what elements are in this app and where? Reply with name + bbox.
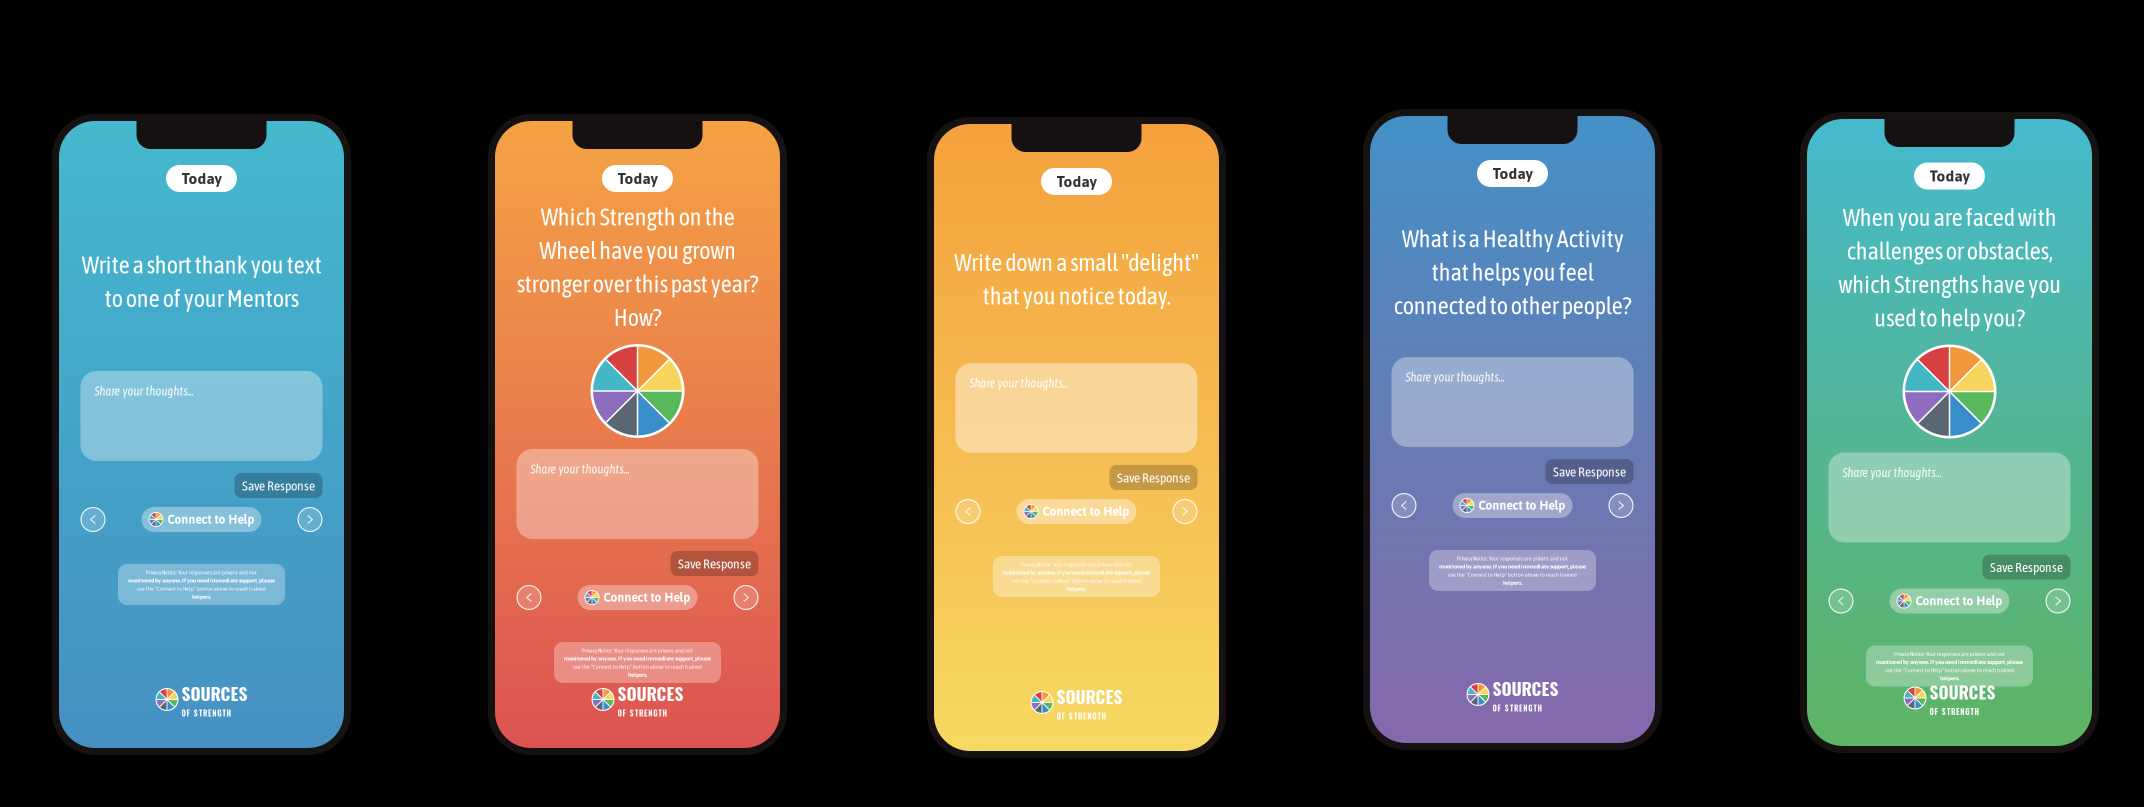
staticText: Connect to Help: [1042, 505, 1129, 518]
button[interactable]: Previous prompt: [80, 507, 105, 532]
staticText: OF STRENGTH: [1492, 703, 1542, 714]
staticText: OF STRENGTH: [181, 708, 231, 719]
staticText: OF STRENGTH: [617, 708, 667, 719]
button[interactable]: Previous prompt: [516, 585, 541, 610]
staticText: Save Response: [1117, 470, 1190, 485]
staticText: When you are faced with challenges or ob…: [1838, 203, 2061, 331]
staticText: What is a Healthy Activity that helps yo…: [1393, 225, 1631, 319]
staticText: SOURCES: [1929, 679, 1995, 705]
staticText: Privacy Notice: Your responses are priva…: [146, 569, 257, 576]
staticText: Connect to Help: [1478, 499, 1565, 512]
staticText: monitored by anyone. If you need immedia…: [1876, 659, 2023, 665]
staticText: Write down a small "delight" that you no…: [954, 248, 1199, 309]
button[interactable]: Next prompt: [2045, 588, 2070, 613]
button[interactable]: Save Response: [234, 473, 322, 498]
staticText: SOURCES: [617, 680, 683, 706]
staticText: Save Response: [678, 556, 751, 571]
staticText: helpers.: [1940, 675, 1959, 681]
staticText: Privacy Notice: Your responses are priva…: [1457, 555, 1568, 562]
button[interactable]: Save Response: [1545, 459, 1633, 484]
staticText: Share your thoughts...: [969, 376, 1068, 390]
button[interactable]: Connect to Help: [141, 507, 261, 532]
staticText: Share your thoughts...: [1842, 465, 1941, 480]
staticText: SOURCES: [1492, 675, 1558, 701]
staticText: Connect to Help: [603, 591, 690, 604]
button[interactable]: Connect to Help: [1016, 499, 1136, 524]
button[interactable]: Today: [1914, 162, 1985, 189]
staticText: monitored by anyone. If you need immedia…: [128, 577, 275, 584]
button[interactable]: Next prompt: [297, 507, 322, 532]
staticText: OF STRENGTH: [1056, 711, 1106, 722]
staticText: SOURCES: [181, 680, 247, 706]
button[interactable]: Previous prompt: [955, 499, 980, 524]
staticText: Share your thoughts...: [94, 384, 193, 398]
staticText: Today: [1929, 167, 1969, 185]
button[interactable]: Save Response: [670, 551, 758, 576]
staticText: monitored by anyone. If you need immedia…: [564, 655, 711, 662]
staticText: Save Response: [242, 478, 315, 493]
staticText: Write a short thank you text to one of y…: [81, 251, 321, 312]
button[interactable]: Next prompt: [1608, 493, 1633, 518]
button[interactable]: Next prompt: [733, 585, 758, 610]
button[interactable]: Connect to Help: [1452, 493, 1572, 518]
staticText: Today: [1492, 165, 1532, 182]
staticText: use the "Connect to Help" button above t…: [1448, 571, 1577, 578]
button[interactable]: Save Response: [1982, 554, 2070, 579]
staticText: helpers.: [628, 671, 647, 678]
staticText: Save Response: [1990, 559, 2063, 575]
staticText: Today: [1056, 173, 1096, 190]
staticText: use the "Connect to Help" button above t…: [1885, 667, 2014, 673]
button[interactable]: Save Response: [1109, 465, 1197, 490]
staticText: Today: [181, 170, 221, 187]
staticText: helpers.: [1503, 579, 1522, 586]
staticText: Share your thoughts...: [1405, 370, 1504, 384]
staticText: Which Strength on the Wheel have you gro…: [516, 203, 758, 331]
staticText: use the "Connect to Help" button above t…: [137, 585, 266, 592]
staticText: Connect to Help: [167, 513, 254, 526]
staticText: SOURCES: [1056, 683, 1122, 709]
staticText: use the "Connect to Help" button above t…: [1012, 577, 1141, 584]
staticText: Connect to Help: [1915, 594, 2002, 608]
staticText: helpers.: [192, 593, 211, 600]
button[interactable]: Previous prompt: [1391, 493, 1416, 518]
staticText: OF STRENGTH: [1929, 706, 1979, 717]
staticText: Save Response: [1553, 464, 1626, 479]
button[interactable]: Today: [1477, 160, 1548, 187]
button[interactable]: Next prompt: [1172, 499, 1197, 524]
staticText: use the "Connect to Help" button above t…: [573, 663, 702, 670]
button[interactable]: Today: [166, 165, 237, 192]
button[interactable]: Connect to Help: [1889, 588, 2009, 613]
staticText: Privacy Notice: Your responses are priva…: [1894, 650, 2005, 657]
staticText: Privacy Notice: Your responses are priva…: [582, 647, 693, 654]
staticText: Today: [617, 170, 657, 187]
staticText: Privacy Notice: Your responses are priva…: [1021, 561, 1132, 568]
button[interactable]: Today: [1041, 168, 1112, 195]
staticText: monitored by anyone. If you need immedia…: [1439, 563, 1586, 570]
button[interactable]: Today: [602, 165, 673, 192]
button[interactable]: Connect to Help: [577, 585, 697, 610]
staticText: monitored by anyone. If you need immedia…: [1003, 569, 1150, 576]
staticText: Share your thoughts...: [530, 462, 629, 476]
button[interactable]: Previous prompt: [1828, 588, 1853, 613]
staticText: helpers.: [1067, 585, 1086, 592]
